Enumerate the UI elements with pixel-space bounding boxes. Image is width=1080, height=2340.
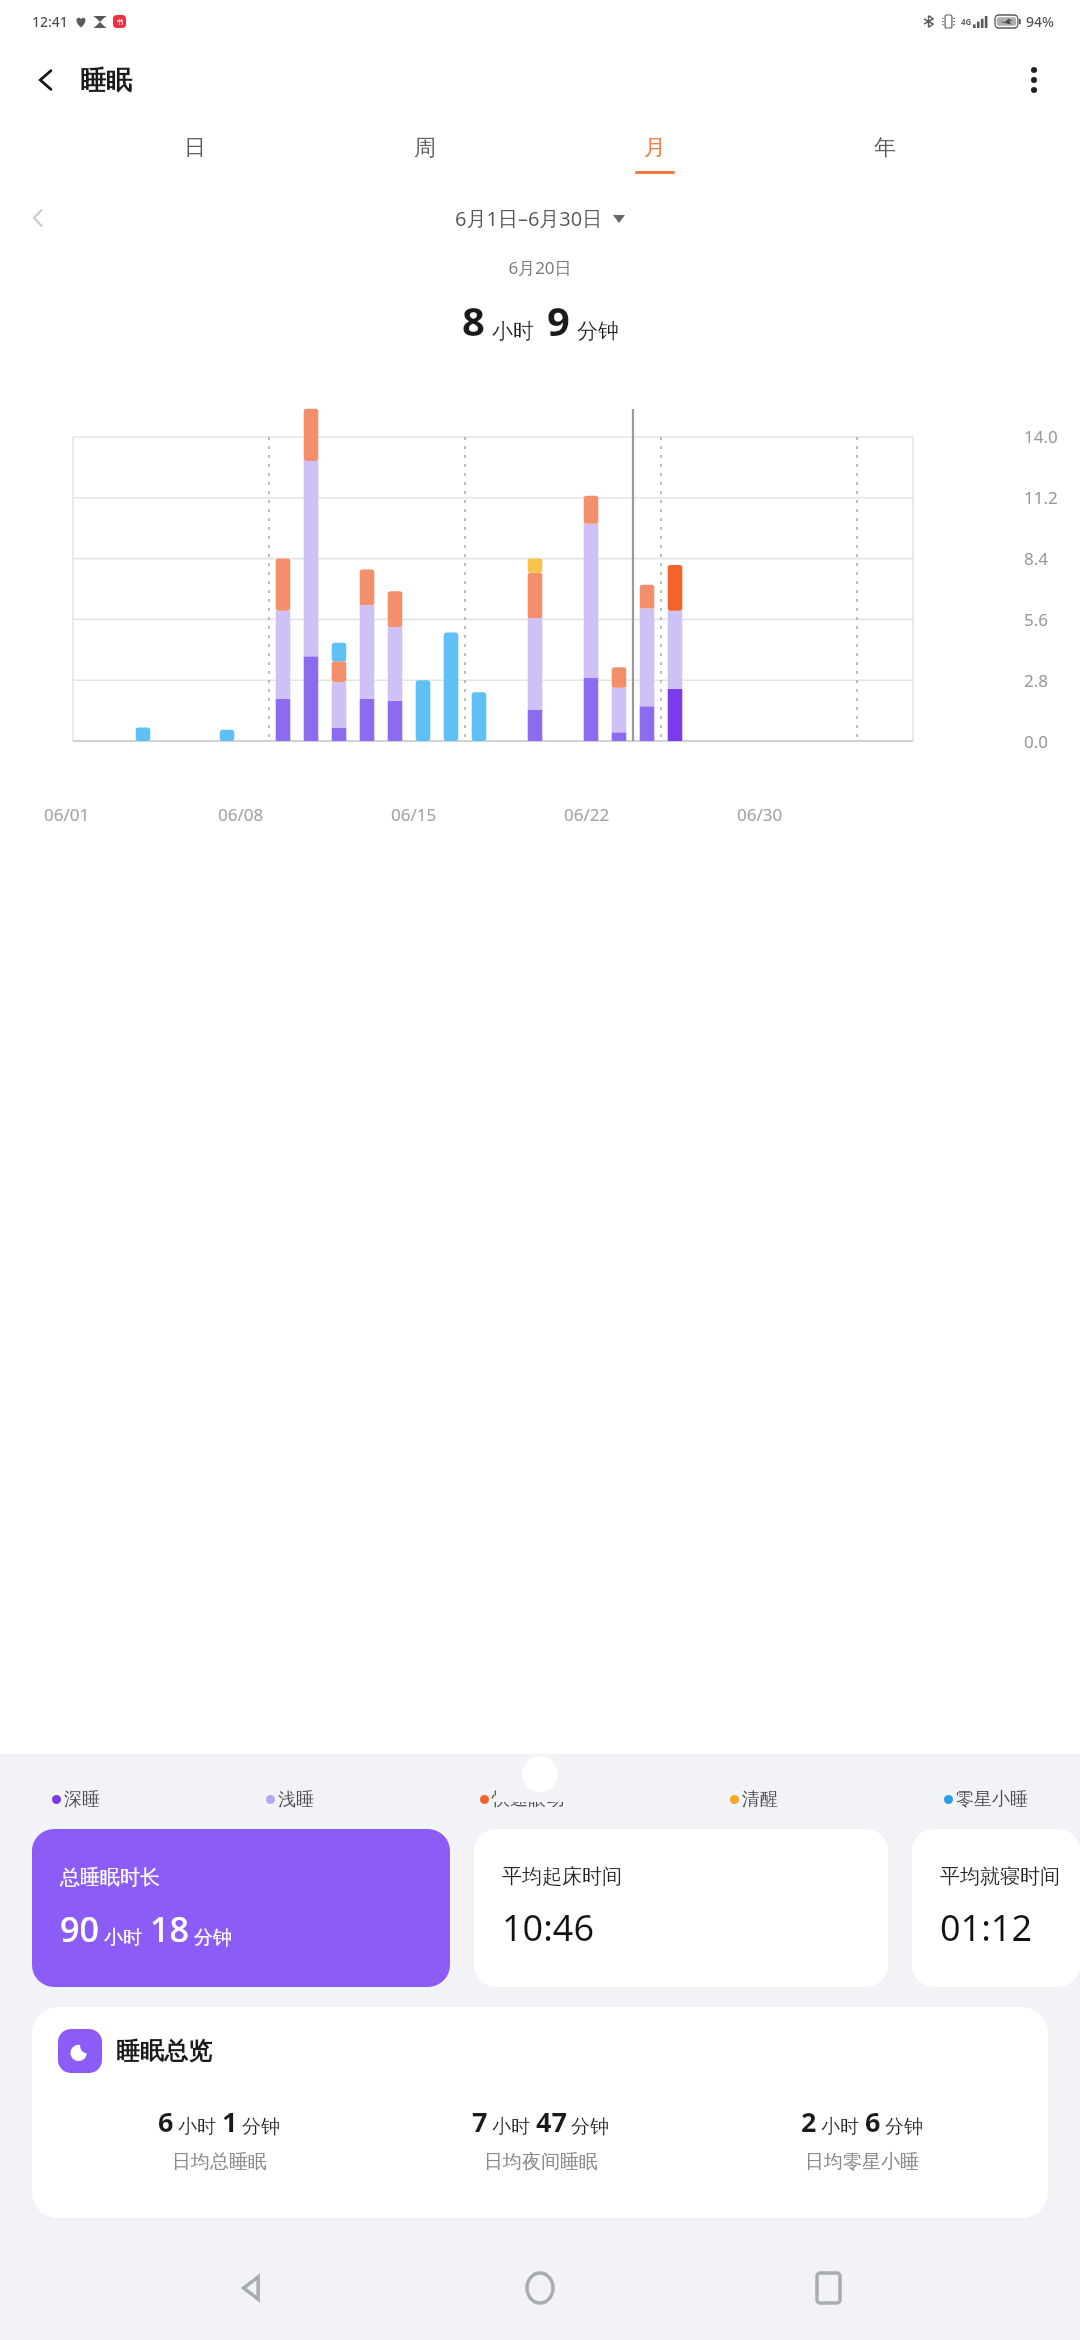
staticText: 睡眠总览 xyxy=(116,2036,212,2066)
button[interactable]: Back xyxy=(18,52,74,108)
staticText: 日均夜间睡眠 xyxy=(484,2150,598,2174)
staticText: 90 xyxy=(60,1906,99,1952)
staticText: 7 xyxy=(472,2103,488,2140)
staticText: 8 xyxy=(462,293,485,347)
staticText: 分钟 xyxy=(885,2115,923,2139)
staticText: 6 xyxy=(865,2103,881,2140)
staticText: 1 xyxy=(222,2103,238,2140)
staticText: 分钟 xyxy=(577,318,619,344)
staticText: 18 xyxy=(150,1906,189,1952)
staticText: 06/22 xyxy=(564,803,610,826)
staticText: 6月1日–6月30日 xyxy=(455,205,603,232)
staticText: 浅睡 xyxy=(278,1788,314,1811)
staticText: 小时 xyxy=(178,2115,216,2139)
staticText: 9 xyxy=(547,293,570,347)
staticText: 分钟 xyxy=(242,2115,280,2139)
button[interactable]: Previous period xyxy=(14,194,62,242)
button[interactable]: More options xyxy=(1006,52,1062,108)
staticText: 0.0 xyxy=(1024,730,1049,753)
staticText: 日 xyxy=(184,134,206,162)
staticText: 日均总睡眠 xyxy=(172,2150,267,2174)
staticText: 清醒 xyxy=(742,1788,778,1811)
staticText: 2.8 xyxy=(1024,669,1049,692)
staticText: 12:41 xyxy=(32,12,68,31)
staticText: 06/15 xyxy=(391,803,437,826)
staticText: 5.6 xyxy=(1024,608,1049,631)
button[interactable]: 月 xyxy=(540,118,770,190)
staticText: 深睡 xyxy=(64,1788,100,1811)
staticText: 分钟 xyxy=(194,1926,232,1950)
button[interactable]: 周 xyxy=(310,118,540,190)
staticText: 06/30 xyxy=(737,803,783,826)
staticText: 2 xyxy=(801,2103,817,2140)
staticText: 周 xyxy=(414,134,436,162)
staticText: 14.0 xyxy=(1024,425,1058,448)
staticText: 01:12 xyxy=(940,1903,1033,1952)
staticText: 6 xyxy=(158,2103,174,2140)
staticText: 平均就寝时间 xyxy=(940,1864,1060,1889)
staticText: 8.4 xyxy=(1024,547,1049,570)
staticText: 11.2 xyxy=(1024,486,1058,509)
staticText: 书 xyxy=(117,18,123,26)
staticText: 小时 xyxy=(492,2115,530,2139)
staticText: 快速眼动 xyxy=(492,1788,564,1811)
staticText: 06/01 xyxy=(44,803,90,826)
staticText: 分钟 xyxy=(571,2115,609,2139)
staticText: 日均零星小睡 xyxy=(805,2150,919,2174)
staticText: 总睡眠时长 xyxy=(60,1865,160,1890)
staticText: 睡眠 xyxy=(80,64,132,97)
staticText: 年 xyxy=(874,134,896,162)
staticText: 10:46 xyxy=(502,1903,595,1952)
button[interactable]: 6月1日–6月30日 xyxy=(455,205,625,232)
staticText: 6月20日 xyxy=(0,256,1080,279)
staticText: 平均起床时间 xyxy=(502,1864,622,1889)
button[interactable]: Recents xyxy=(792,2252,864,2324)
staticText: 零星小睡 xyxy=(956,1788,1028,1811)
button[interactable]: 平均就寝时间 xyxy=(912,1829,1080,1987)
staticText: 小时 xyxy=(492,318,534,344)
staticText: 小时 xyxy=(821,2115,859,2139)
button[interactable]: 睡眠总览 xyxy=(32,2007,1048,2218)
staticText: 月 xyxy=(644,134,666,162)
button[interactable]: 平均起床时间 xyxy=(474,1829,888,1987)
button[interactable]: 总睡眠时长 xyxy=(32,1829,450,1987)
staticText: 47 xyxy=(536,2103,567,2140)
button[interactable]: 日 xyxy=(80,118,310,190)
staticText: 06/08 xyxy=(218,803,264,826)
button[interactable]: 年 xyxy=(770,118,1000,190)
staticText: 4G xyxy=(961,16,972,27)
button[interactable]: Home xyxy=(504,2252,576,2324)
staticText: 94% xyxy=(1026,12,1054,31)
button[interactable]: Back xyxy=(216,2252,288,2324)
staticText: 小时 xyxy=(104,1926,142,1950)
